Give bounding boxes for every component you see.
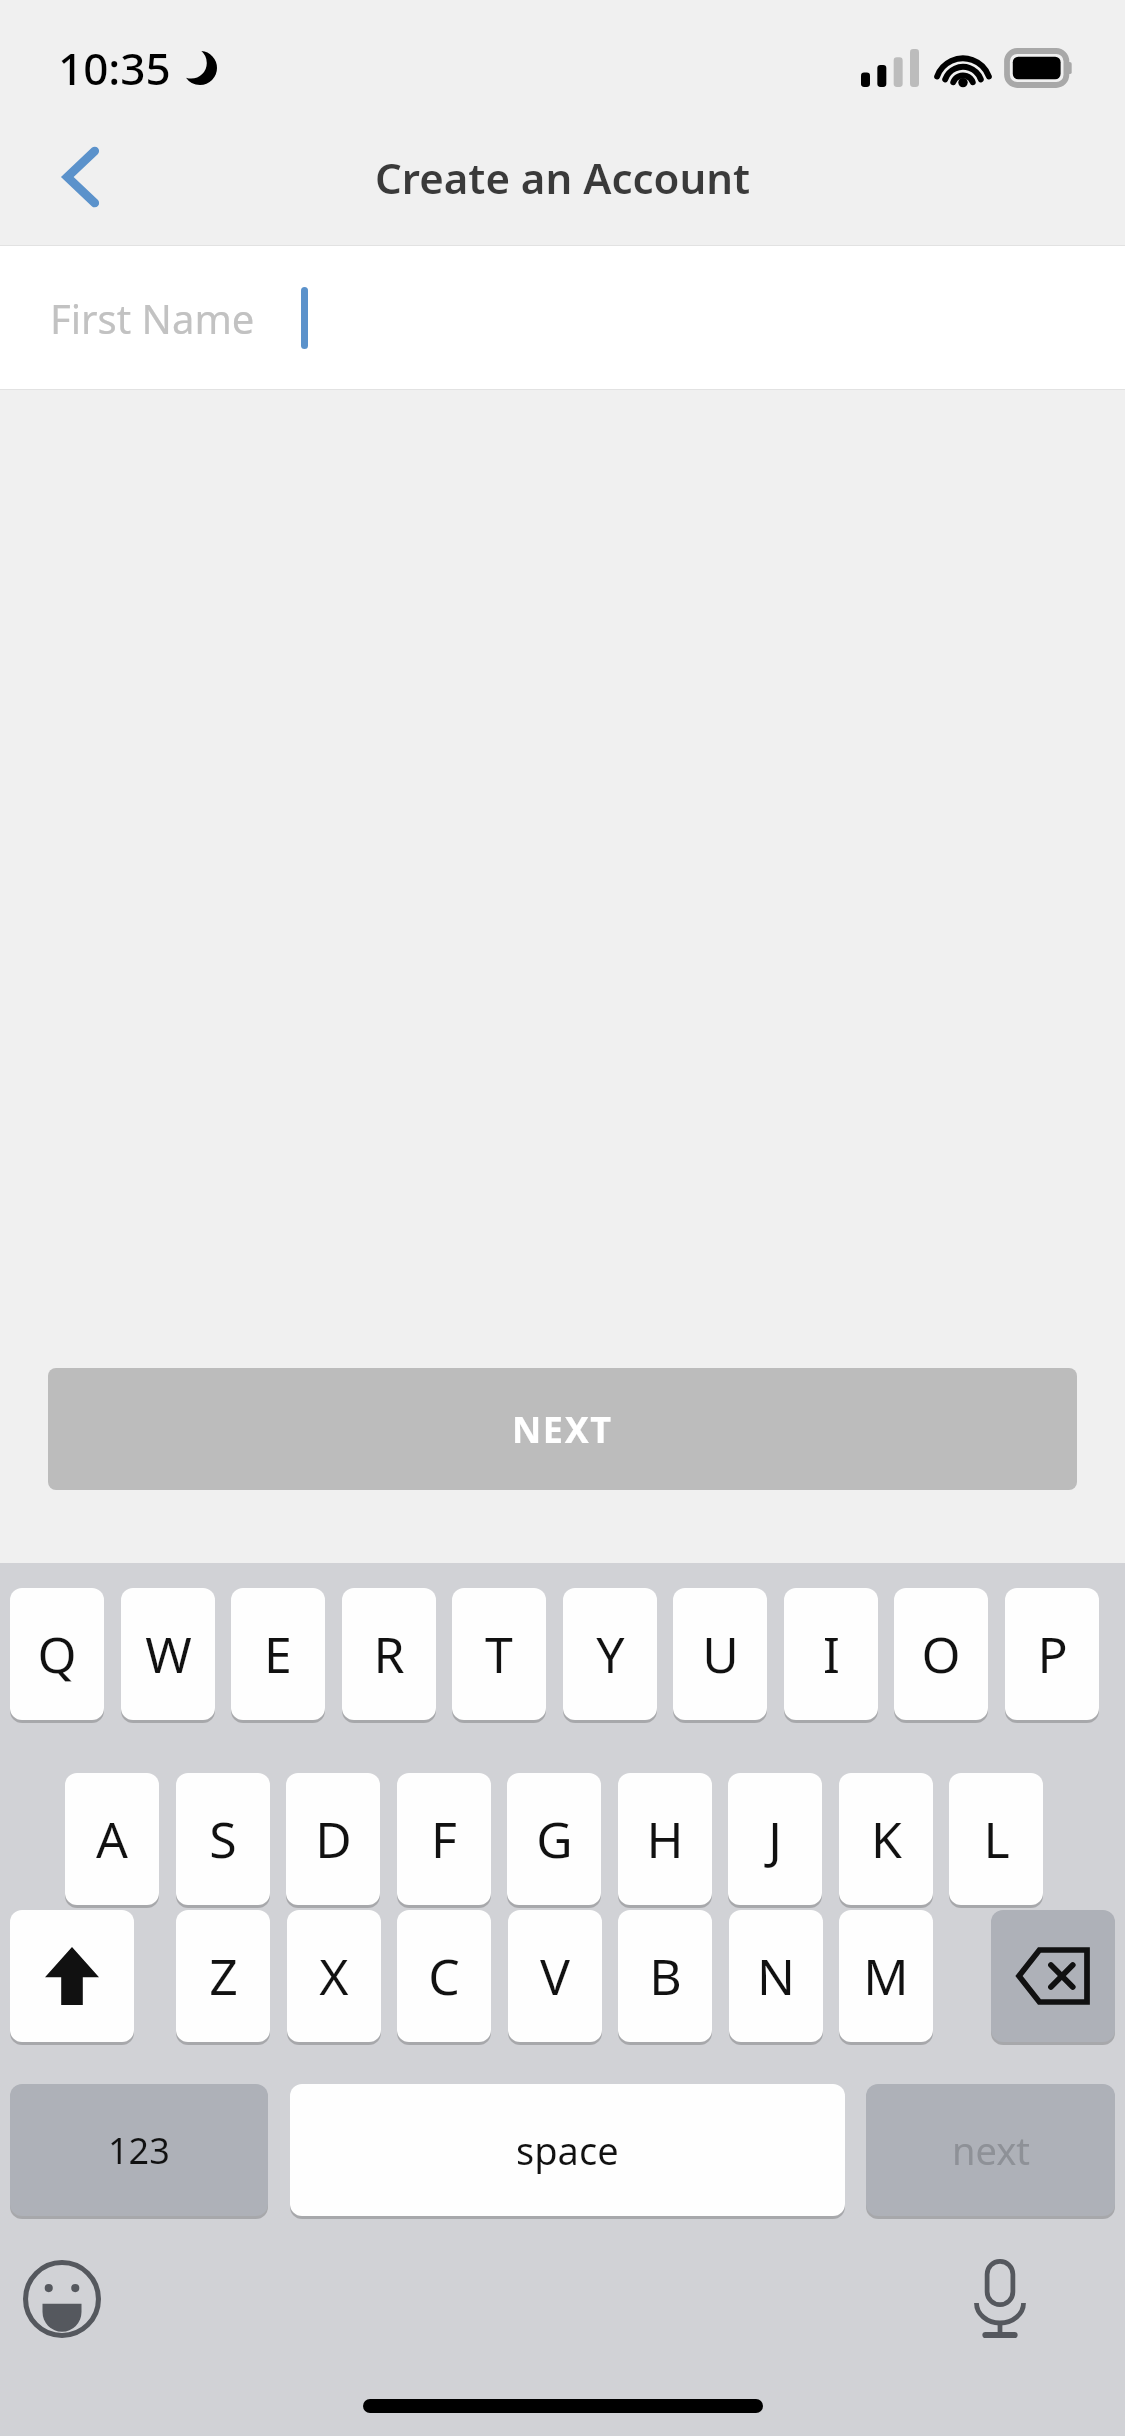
- button[interactable]: R: [342, 1588, 436, 1720]
- button[interactable]: G: [507, 1773, 601, 1905]
- button[interactable]: A: [65, 1773, 159, 1905]
- staticText: O: [921, 1620, 961, 1688]
- staticText: NEXT: [512, 1405, 613, 1454]
- staticText: Z: [209, 1942, 238, 2010]
- button[interactable]: O: [894, 1588, 988, 1720]
- staticText: H: [646, 1805, 684, 1873]
- button[interactable]: W: [121, 1588, 215, 1720]
- button[interactable]: next: [866, 2084, 1115, 2216]
- staticText: K: [871, 1805, 902, 1873]
- button[interactable]: Emoji: [18, 2255, 106, 2343]
- button[interactable]: L: [949, 1773, 1043, 1905]
- button[interactable]: Voice input: [956, 2255, 1044, 2343]
- staticText: E: [264, 1620, 292, 1688]
- button[interactable]: F: [397, 1773, 491, 1905]
- staticText: Create an Account: [375, 149, 751, 206]
- button[interactable]: 123: [10, 2084, 268, 2216]
- staticText: First Name: [50, 291, 255, 345]
- staticText: 123: [108, 2126, 170, 2175]
- staticText: S: [209, 1805, 237, 1873]
- staticText: G: [536, 1805, 573, 1873]
- staticText: W: [145, 1620, 192, 1688]
- staticText: T: [485, 1620, 513, 1688]
- button[interactable]: Y: [563, 1588, 657, 1720]
- staticText: M: [863, 1942, 909, 2010]
- button[interactable]: Z: [176, 1910, 270, 2042]
- staticText: next: [952, 2124, 1030, 2176]
- button[interactable]: N: [729, 1910, 823, 2042]
- button[interactable]: X: [287, 1910, 381, 2042]
- button[interactable]: K: [839, 1773, 933, 1905]
- staticText: C: [428, 1942, 460, 2010]
- button[interactable]: T: [452, 1588, 546, 1720]
- staticText: V: [540, 1942, 570, 2010]
- staticText: U: [702, 1620, 739, 1688]
- staticText: X: [319, 1942, 349, 2010]
- staticText: I: [823, 1620, 840, 1688]
- staticText: J: [768, 1805, 782, 1873]
- button[interactable]: Shift: [10, 1910, 134, 2042]
- staticText: N: [757, 1942, 795, 2010]
- staticText: F: [431, 1805, 457, 1873]
- button[interactable]: E: [231, 1588, 325, 1720]
- button[interactable]: C: [397, 1910, 491, 2042]
- staticText: space: [516, 2124, 619, 2176]
- button[interactable]: space: [290, 2084, 845, 2216]
- button[interactable]: P: [1005, 1588, 1099, 1720]
- button[interactable]: M: [839, 1910, 933, 2042]
- button[interactable]: H: [618, 1773, 712, 1905]
- button[interactable]: Back: [40, 136, 122, 218]
- button[interactable]: V: [508, 1910, 602, 2042]
- staticText: Y: [596, 1620, 625, 1688]
- button[interactable]: S: [176, 1773, 270, 1905]
- staticText: L: [983, 1805, 1010, 1873]
- button[interactable]: D: [286, 1773, 380, 1905]
- button[interactable]: J: [728, 1773, 822, 1905]
- button[interactable]: Q: [10, 1588, 104, 1720]
- button[interactable]: Backspace: [991, 1910, 1115, 2042]
- button[interactable]: NEXT: [48, 1368, 1077, 1490]
- staticText: Q: [37, 1620, 77, 1688]
- staticText: A: [96, 1805, 128, 1873]
- staticText: B: [649, 1942, 682, 2010]
- staticText: D: [315, 1805, 352, 1873]
- button[interactable]: U: [673, 1588, 767, 1720]
- staticText: P: [1037, 1620, 1068, 1688]
- button[interactable]: B: [618, 1910, 712, 2042]
- button[interactable]: I: [784, 1588, 878, 1720]
- staticText: R: [373, 1620, 405, 1688]
- button[interactable]: First Name: [0, 246, 1125, 389]
- staticText: 10:35: [58, 38, 171, 98]
